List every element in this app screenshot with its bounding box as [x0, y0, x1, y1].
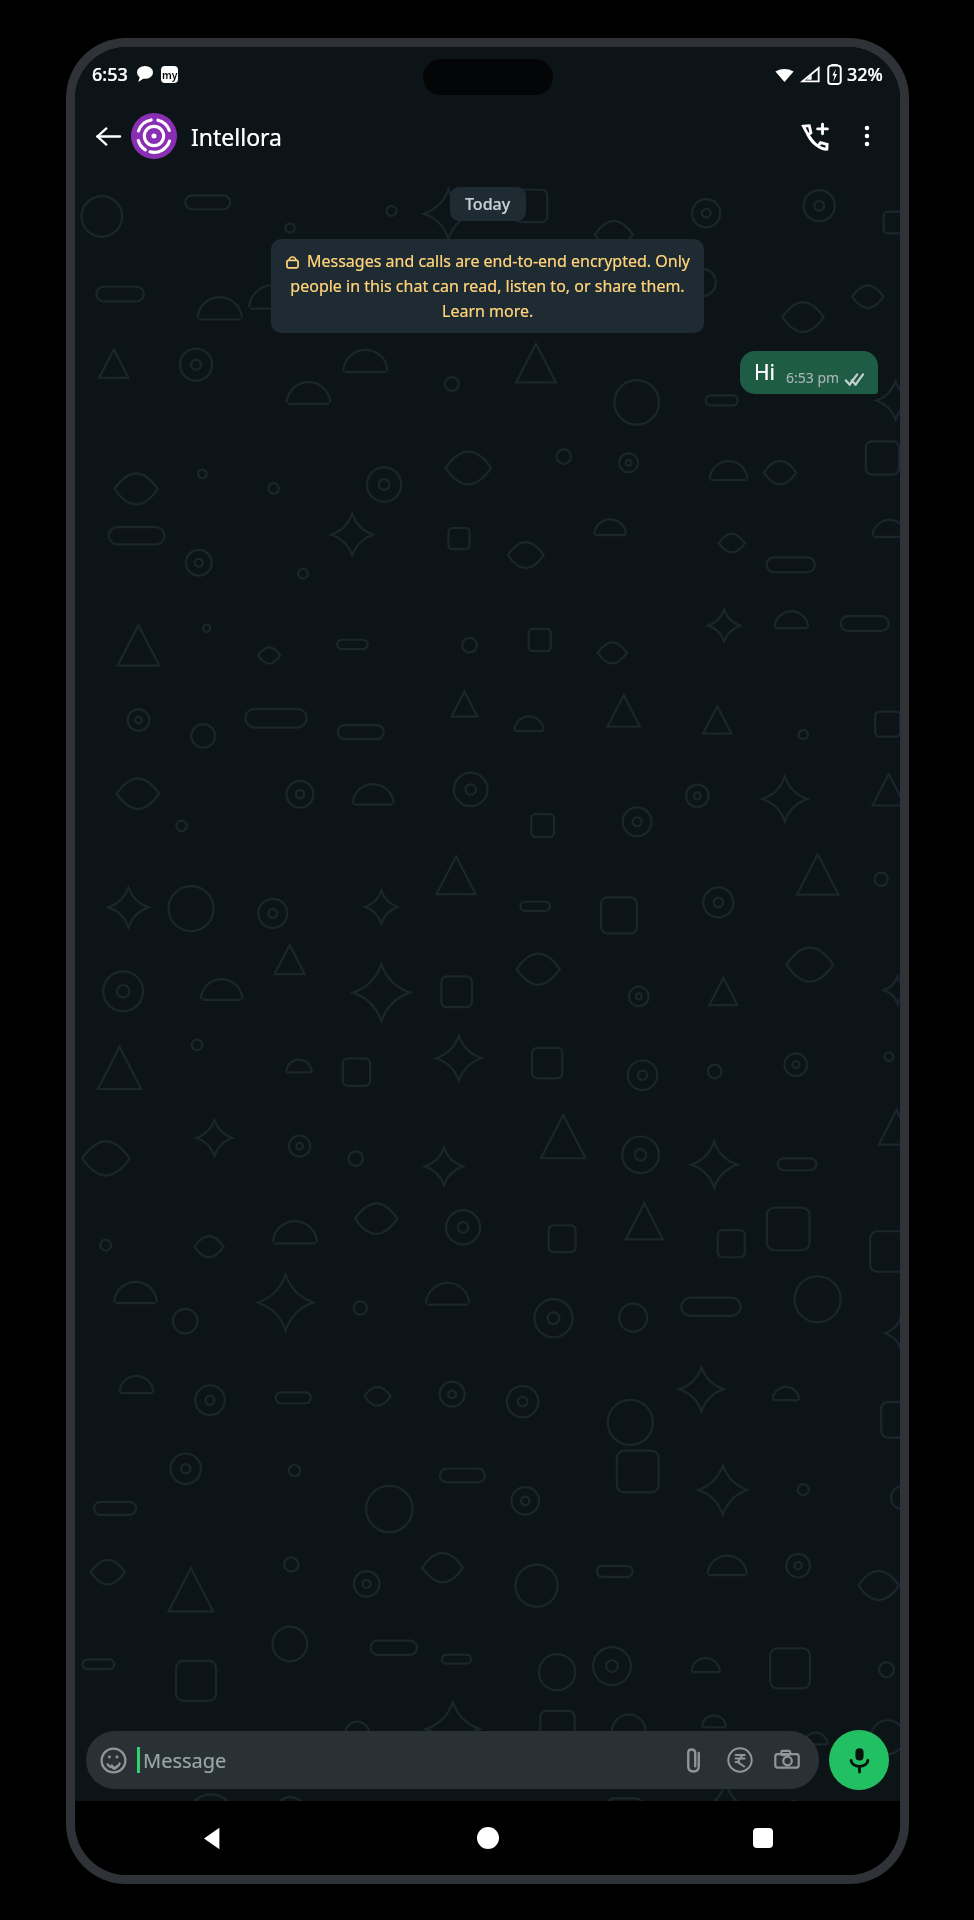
button[interactable]: New call [792, 113, 838, 159]
button[interactable]: Voice message [829, 1730, 889, 1790]
button[interactable]: More options [846, 115, 888, 157]
button[interactable]: Payment [722, 1742, 758, 1778]
staticText: 6:53 [92, 62, 128, 87]
button[interactable]: Attach [675, 1742, 711, 1778]
button[interactable]: Back [75, 1801, 350, 1875]
staticText: Learn more. [442, 300, 534, 322]
staticText: 32% [847, 62, 883, 87]
button[interactable]: Back [87, 115, 129, 157]
button[interactable]: Intellora [131, 113, 792, 159]
button[interactable]: Camera [769, 1742, 805, 1778]
staticText: Today [465, 193, 511, 215]
button[interactable]: Message [86, 1731, 819, 1789]
staticText: 6:53 pm [786, 368, 840, 387]
staticText: my [162, 68, 178, 82]
button[interactable]: Messages and calls are end-to-end encryp… [271, 239, 704, 333]
button[interactable]: Hi [740, 351, 878, 394]
staticText: Hi [754, 358, 775, 387]
button[interactable]: Recents [625, 1801, 900, 1875]
button[interactable]: Today [450, 187, 526, 221]
button[interactable]: Home [350, 1801, 625, 1875]
staticText: Messages and calls are end-to-end encryp… [307, 250, 690, 272]
staticText: people in this chat can read, listen to,… [290, 275, 685, 297]
staticText: Intellora [191, 121, 283, 152]
staticText: Message [143, 1747, 227, 1774]
